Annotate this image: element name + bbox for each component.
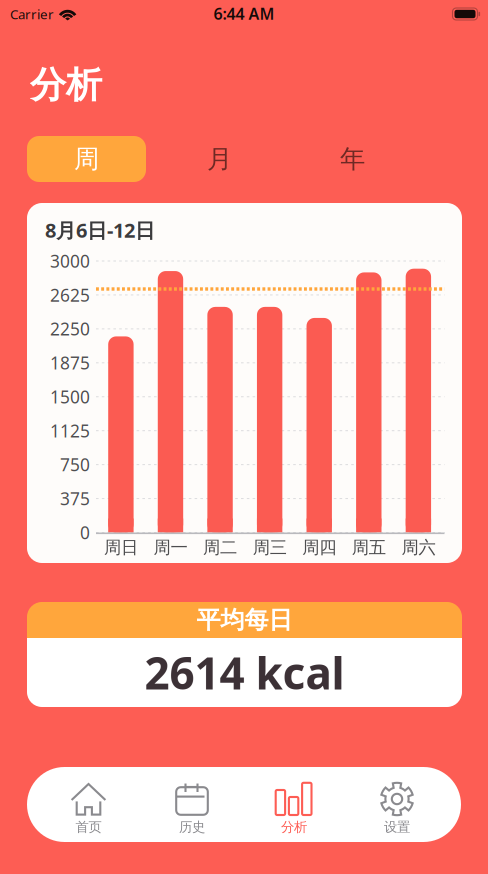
staticText: 首页 xyxy=(75,819,101,835)
button[interactable]: 历史 xyxy=(142,767,242,842)
button[interactable]: 分析 xyxy=(244,767,344,842)
staticText: 6:44 AM xyxy=(213,3,274,24)
staticText: 分析 xyxy=(30,63,102,107)
staticText: 1875 xyxy=(50,351,90,374)
staticText: 设置 xyxy=(384,819,410,835)
button[interactable]: 周 xyxy=(27,136,146,182)
staticText: 3000 xyxy=(50,249,90,272)
staticText: 1125 xyxy=(50,419,90,442)
staticText: 周五 xyxy=(352,537,386,558)
staticText: 年 xyxy=(340,143,365,174)
staticText: 2614 kcal xyxy=(144,643,344,702)
staticText: 8月6日-12日 xyxy=(45,217,155,243)
staticText: 1500 xyxy=(50,385,90,408)
button[interactable]: 首页 xyxy=(38,767,138,842)
staticText: 0 xyxy=(80,521,90,544)
staticText: 周一 xyxy=(153,537,187,558)
staticText: Carrier xyxy=(10,5,54,23)
staticText: 周四 xyxy=(302,537,336,558)
button[interactable]: 年 xyxy=(293,136,412,182)
staticText: 周 xyxy=(74,143,99,174)
staticText: 750 xyxy=(60,453,90,476)
staticText: 分析 xyxy=(281,819,307,835)
staticText: 周六 xyxy=(401,537,435,558)
staticText: 2250 xyxy=(50,317,90,340)
staticText: 周三 xyxy=(253,537,287,558)
staticText: 平均每日 xyxy=(196,605,292,635)
staticText: 周二 xyxy=(203,537,237,558)
staticText: 2625 xyxy=(50,283,90,306)
staticText: 历史 xyxy=(179,819,205,835)
staticText: 375 xyxy=(60,487,90,510)
staticText: 月 xyxy=(207,143,232,174)
button[interactable]: 设置 xyxy=(347,767,447,842)
staticText: 周日 xyxy=(104,537,138,558)
button[interactable]: 月 xyxy=(160,136,279,182)
